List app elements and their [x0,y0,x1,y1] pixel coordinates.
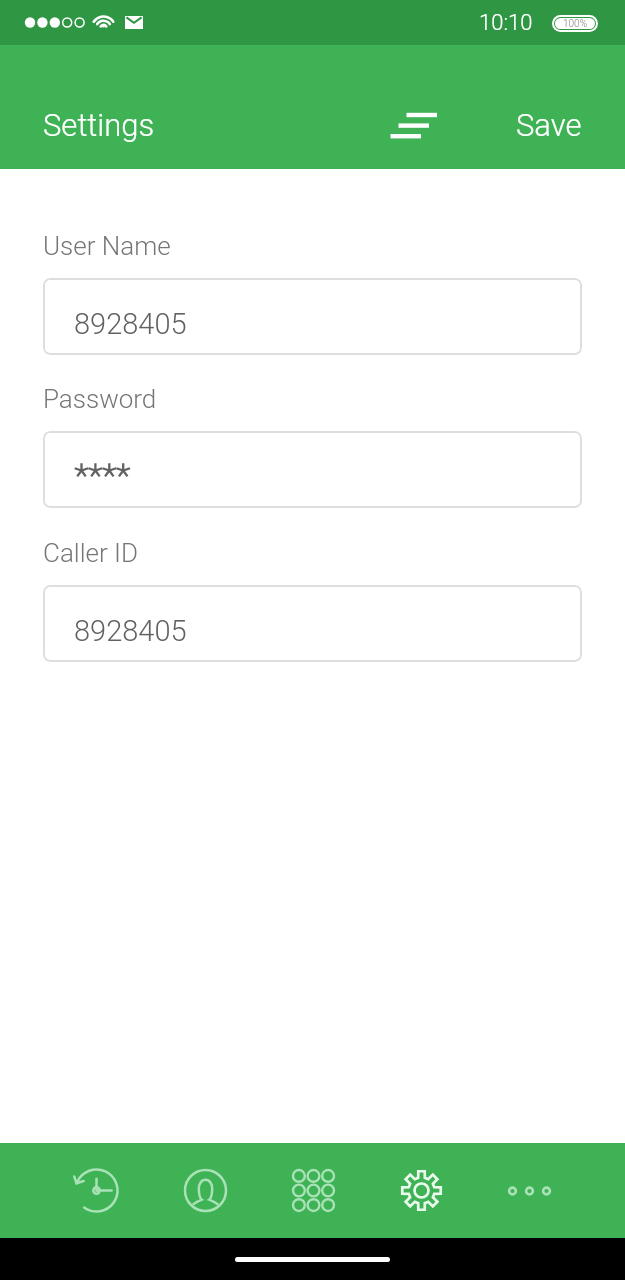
button[interactable] [43,431,582,508]
staticText: Save [516,107,582,143]
staticText: Caller ID [43,538,139,568]
button[interactable]: Settings [367,1143,475,1238]
staticText: User Name [43,231,171,261]
button[interactable]: 8928405 [43,278,582,355]
button[interactable]: Save [473,45,625,169]
button[interactable]: Sort [371,71,443,143]
button[interactable]: More [475,1143,583,1238]
staticText: 8928405 [74,307,187,341]
staticText: 10:10 [479,10,533,36]
staticText: Settings [43,107,155,143]
staticText: 8928405 [74,614,187,648]
button[interactable]: Dialpad [259,1143,367,1238]
button[interactable]: Contacts [151,1143,259,1238]
staticText: 100% [563,18,588,29]
button[interactable]: Recent calls [42,1143,151,1238]
button[interactable]: 8928405 [43,585,582,662]
staticText: Password [43,384,157,414]
